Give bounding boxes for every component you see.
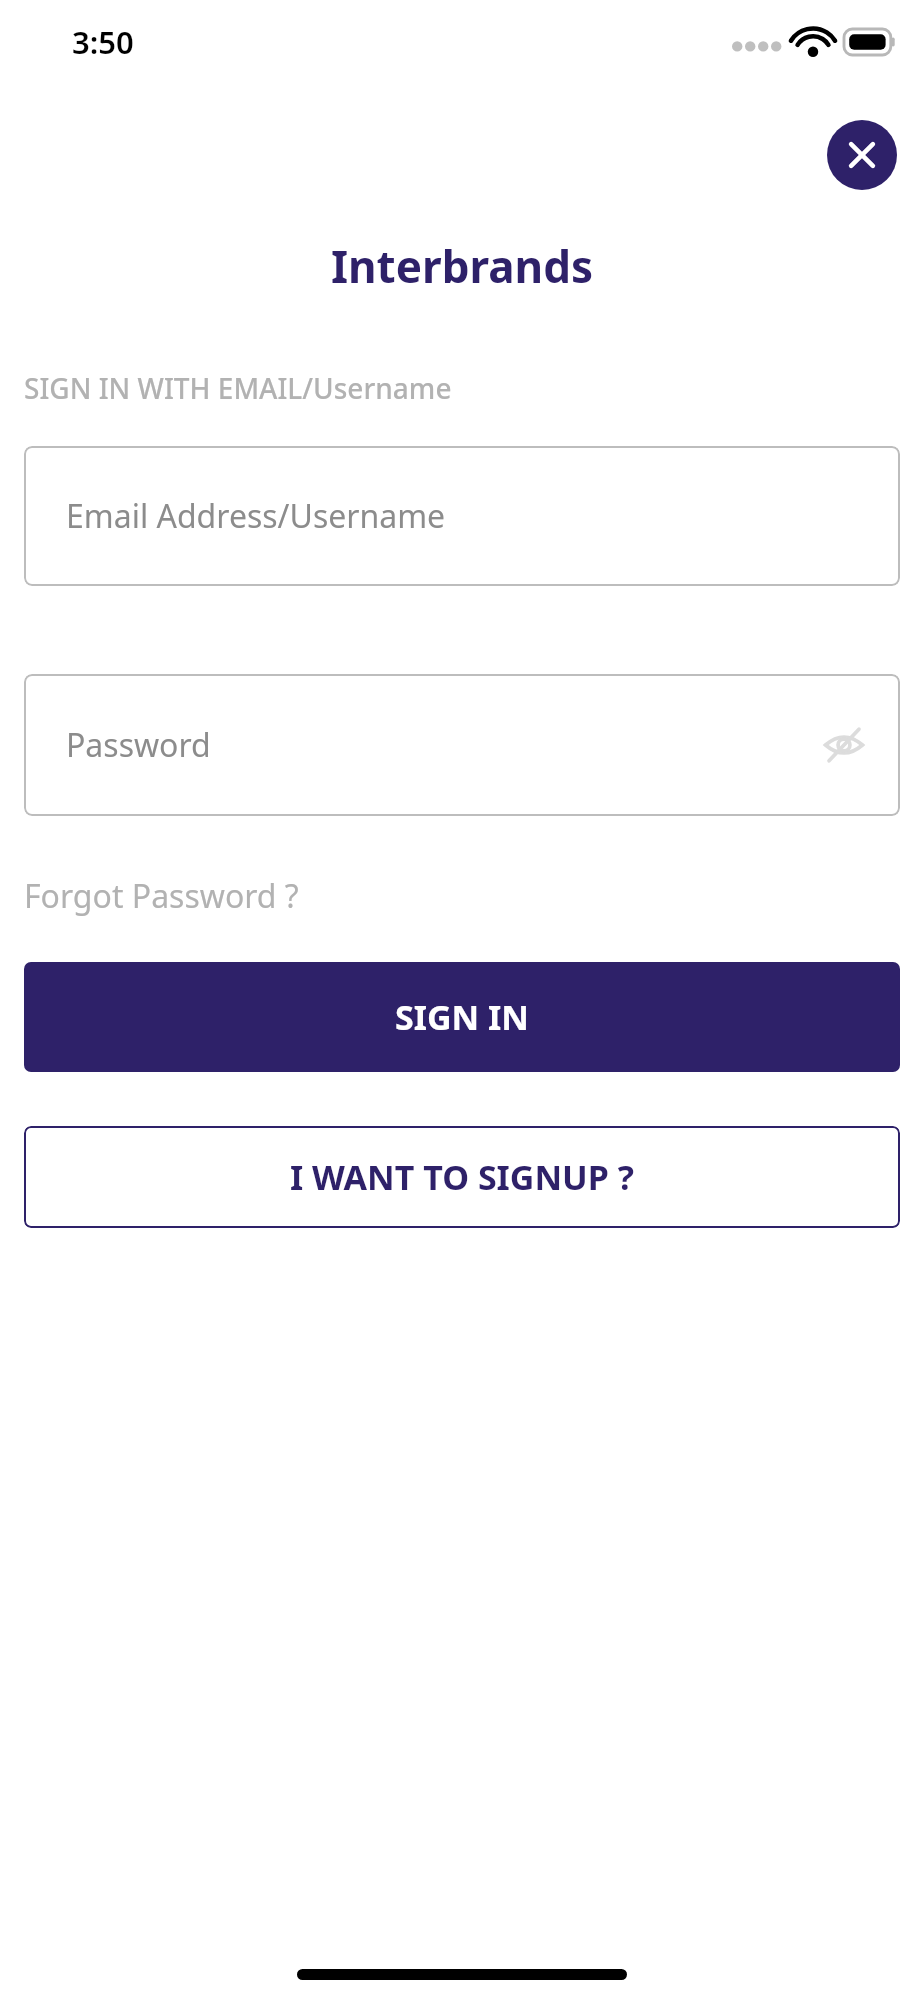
button[interactable]: Email Address/Username xyxy=(24,446,900,586)
button[interactable]: SIGN IN xyxy=(24,962,900,1072)
staticText: SIGN IN xyxy=(395,994,529,1040)
button[interactable]: Close xyxy=(827,120,897,190)
staticText: I WANT TO SIGNUP ? xyxy=(290,1154,634,1200)
button[interactable]: Show password xyxy=(820,721,868,769)
button[interactable]: Forgot Password ? xyxy=(24,874,299,918)
button[interactable]: I WANT TO SIGNUP ? xyxy=(24,1126,900,1228)
staticText: SIGN IN WITH EMAIL/Username xyxy=(24,369,452,407)
staticText: 3:50 xyxy=(72,21,134,63)
staticText: Forgot Password ? xyxy=(24,874,299,918)
button[interactable]: Password xyxy=(24,674,900,816)
staticText: Password xyxy=(66,723,211,767)
staticText: Email Address/Username xyxy=(66,494,446,538)
staticText: Interbrands xyxy=(0,236,924,296)
